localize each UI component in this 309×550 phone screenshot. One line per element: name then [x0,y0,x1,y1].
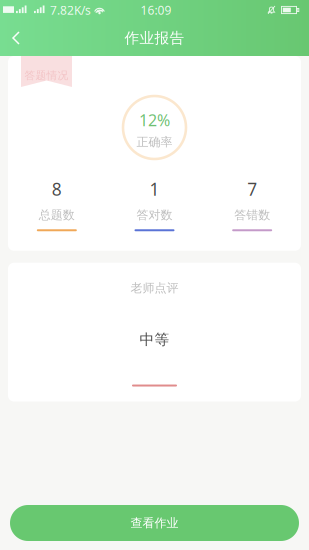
staticText: 中等 [139,330,169,348]
staticText: 7.82K/s [50,2,91,18]
staticText: 16:09 [140,2,171,18]
staticText: 答错数 [234,207,270,222]
staticText: 作业报告 [124,29,184,47]
staticText: 老师点评 [130,281,178,295]
staticText: 总题数 [39,207,75,222]
staticText: 正确率 [136,135,172,149]
staticText: 答题情况 [24,69,68,82]
staticText: 查看作业 [130,516,178,530]
button[interactable]: 返回 [0,20,32,56]
staticText: 答对数 [136,207,172,222]
staticText: 8 [52,177,62,200]
staticText: 7 [247,177,257,200]
button[interactable]: 查看作业 [10,505,299,541]
staticText: 1 [149,177,159,200]
staticText: 12% [139,109,170,131]
